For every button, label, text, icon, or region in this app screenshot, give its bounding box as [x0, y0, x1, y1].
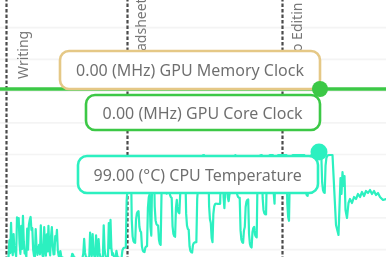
button[interactable]: Performance chart	[0, 0, 386, 257]
